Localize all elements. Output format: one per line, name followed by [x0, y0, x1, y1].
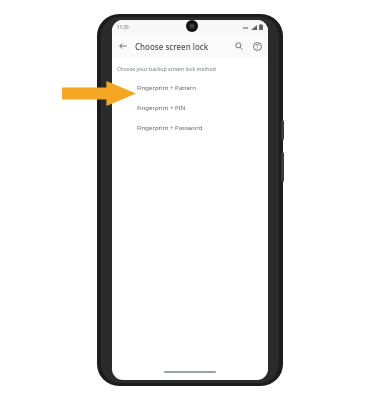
button[interactable]: Help	[250, 39, 264, 53]
staticText: Fingerprint + PIN	[137, 104, 186, 112]
staticText: Fingerprint + Password	[137, 124, 203, 132]
other: Pointer highlighting Fingerprint + Patte…	[62, 81, 136, 106]
button[interactable]: Fingerprint + PIN	[112, 98, 268, 118]
staticText: Choose screen lock	[135, 41, 209, 52]
button[interactable]: Fingerprint + Password	[112, 118, 268, 138]
button[interactable]: Search	[232, 39, 246, 53]
staticText: Choose your backup screen lock method	[117, 65, 216, 72]
staticText: 11:30	[117, 24, 129, 30]
staticText: Fingerprint + Pattern	[137, 84, 196, 92]
button[interactable]: Fingerprint + Pattern	[112, 78, 268, 98]
button[interactable]: Back	[116, 39, 130, 53]
